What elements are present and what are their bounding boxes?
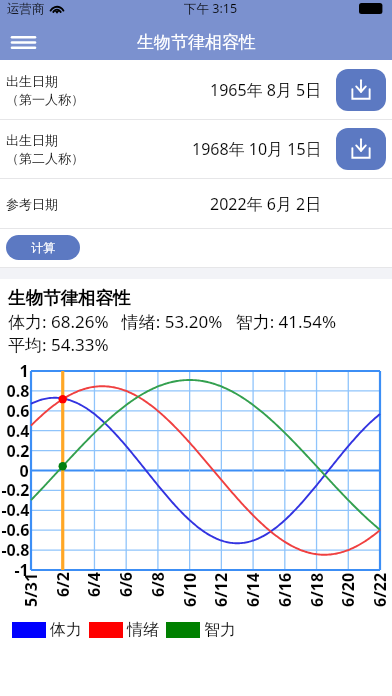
staticText: 下午 3:15: [184, 0, 238, 17]
staticText: （第一人称）: [6, 91, 84, 107]
button[interactable]: 参考日期: [0, 179, 392, 228]
button[interactable]: Save: [336, 128, 386, 170]
staticText: 生物节律相容性: [137, 32, 256, 53]
staticText: 参考日期: [6, 196, 58, 212]
staticText: 2022年 6月 2日: [210, 193, 322, 215]
staticText: 生物节律相容性: [8, 287, 131, 309]
staticText: 智力: [204, 620, 236, 640]
button[interactable]: 计算: [6, 235, 80, 260]
button[interactable]: Save: [336, 69, 386, 111]
staticText: 1968年 10月 15日: [192, 138, 322, 160]
button[interactable]: 出生日期: [0, 120, 392, 178]
staticText: （第二人称）: [6, 150, 84, 166]
staticText: 计算: [31, 240, 55, 255]
staticText: 体力: [50, 620, 82, 640]
staticText: 出生日期: [6, 73, 58, 89]
staticText: 1965年 8月 5日: [210, 79, 322, 101]
button[interactable]: 出生日期: [0, 60, 392, 119]
staticText: 体力: 68.26% 情绪: 53.20% 智力: 41.54%: [8, 310, 337, 333]
staticText: 出生日期: [6, 132, 58, 148]
staticText: 平均: 54.33%: [8, 333, 109, 356]
button[interactable]: Menu: [6, 25, 40, 59]
staticText: 运营商: [7, 1, 45, 17]
staticText: 情绪: [127, 620, 159, 640]
